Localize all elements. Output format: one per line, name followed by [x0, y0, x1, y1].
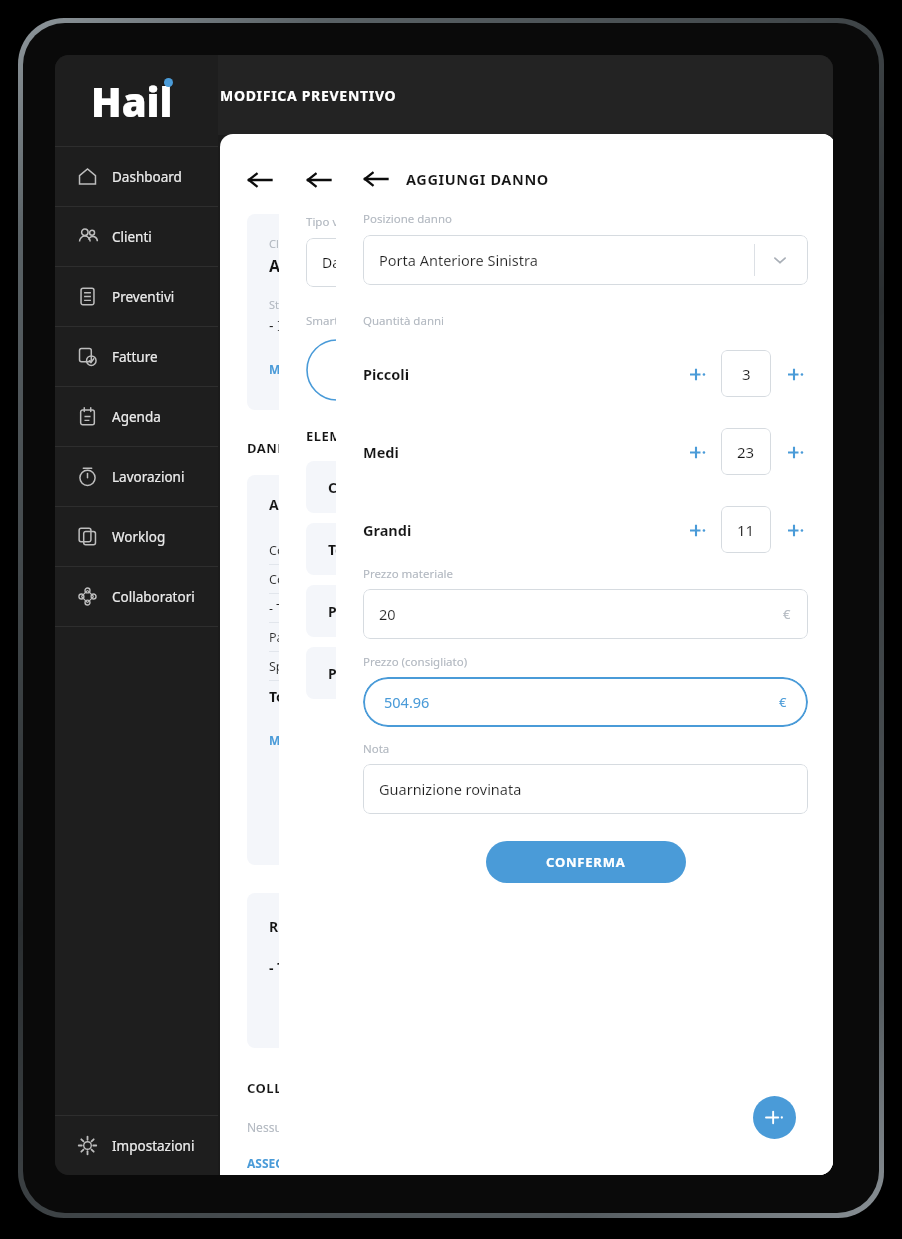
button[interactable]: Indietro [363, 166, 389, 192]
button[interactable]: Indietro [306, 167, 332, 193]
staticText: Porta Ant. Sx [328, 602, 419, 621]
button[interactable]: Diminuisci Medi [684, 439, 710, 465]
button[interactable]: 11 [721, 506, 771, 553]
staticText: MODIFICA [269, 732, 331, 748]
staticText: Nota [363, 741, 390, 757]
staticText: ELEMENTI [306, 427, 375, 445]
staticText: Riepilogo [269, 917, 335, 936]
button[interactable]: Lavorazioni [55, 447, 218, 506]
staticText: Guarnizione rovinata [379, 779, 522, 799]
button[interactable]: 3 [721, 350, 771, 397]
staticText: CONFERMA [546, 853, 626, 871]
button[interactable]: 504.96 [363, 677, 808, 727]
staticText: Worklog [112, 528, 166, 546]
staticText: 3 [742, 364, 751, 384]
button[interactable]: Fatture [55, 327, 218, 386]
button[interactable]: Aumenta Piccoli [782, 361, 808, 387]
staticText: - Tetto [269, 600, 306, 617]
staticText: Parafango [269, 629, 330, 646]
button[interactable]: Diminuisci Grandi [684, 517, 710, 543]
staticText: Hail [91, 74, 173, 128]
button[interactable]: Indietro [247, 167, 273, 193]
staticText: MODIFICA PREVENTIVO [220, 86, 397, 105]
staticText: Cofano [269, 542, 312, 559]
staticText: COLLABORATORI [247, 1079, 363, 1097]
staticText: ACME S.r.l. [269, 255, 350, 277]
staticText: Smart repair [306, 313, 374, 329]
staticText: 11 [737, 520, 755, 540]
staticText: Dark Berlina [322, 253, 404, 272]
button[interactable]: Aumenta Grandi [782, 517, 808, 543]
button[interactable]: Clienti [55, 207, 218, 266]
staticText: Stato [269, 297, 296, 312]
staticText: Tetto [328, 540, 365, 559]
staticText: MODIFICA [269, 361, 331, 377]
staticText: Porta Anteriore Sinistra [379, 250, 538, 270]
staticText: Anteriore [269, 495, 336, 514]
button[interactable]: Guarnizione rovinata [363, 764, 808, 814]
staticText: Prezzo (consigliato) [363, 654, 468, 670]
button[interactable]: Aggiungi [753, 1096, 796, 1139]
staticText: AGGIUNGI DANNO [406, 169, 549, 189]
button[interactable]: Preventivi [55, 267, 218, 326]
staticText: - In lavorazione [269, 316, 370, 335]
button[interactable]: 23 [721, 428, 771, 475]
staticText: Quantità danni [363, 313, 445, 329]
button[interactable]: Agenda [55, 387, 218, 446]
button[interactable]: Dashboard [55, 147, 218, 206]
staticText: Impostazioni [112, 1137, 195, 1155]
staticText: Sportello [269, 658, 322, 675]
staticText: Piccoli [363, 364, 410, 384]
staticText: Cofano [328, 478, 378, 497]
staticText: Cliente [269, 236, 305, 251]
button[interactable]: Collaboratori [55, 567, 218, 626]
button[interactable]: Porta Ant. Sx [306, 585, 576, 637]
staticText: € [779, 693, 787, 711]
staticText: Lavorazioni [112, 468, 185, 486]
staticText: Preventivi [112, 288, 175, 306]
staticText: Parafango [328, 664, 400, 683]
staticText: Totale [269, 687, 312, 706]
staticText: Medi [363, 442, 399, 462]
staticText: 23 [737, 442, 755, 462]
staticText: DANNI [247, 439, 294, 457]
button[interactable]: Porta Anteriore Sinistra [363, 235, 808, 285]
staticText: Agenda [112, 408, 161, 426]
staticText: Fatture [112, 348, 158, 366]
staticText: Clienti [112, 228, 152, 246]
staticText: Nessun collaboratore [247, 1119, 368, 1135]
staticText: ASSEGNA [247, 1155, 302, 1171]
staticText: Dashboard [112, 168, 182, 186]
button[interactable]: Diminuisci Piccoli [684, 361, 710, 387]
button[interactable]: Cofano [306, 461, 576, 513]
button[interactable]: 20 [363, 589, 808, 639]
button[interactable]: Tetto [306, 523, 576, 575]
button[interactable]: Impostazioni [55, 1116, 218, 1175]
staticText: - Totale [269, 958, 320, 977]
staticText: Grandi [363, 520, 412, 540]
button[interactable]: Parafango [306, 647, 576, 699]
staticText: Collaboratori [112, 588, 195, 606]
staticText: 504.96 [384, 692, 430, 712]
staticText: Prezzo materiale [363, 566, 454, 582]
staticText: Tipo veicolo [306, 214, 371, 230]
staticText: Posizione danno [363, 211, 452, 227]
button[interactable]: CONFERMA [486, 841, 686, 883]
staticText: Cofano post. [269, 571, 344, 588]
staticText: 20 [379, 604, 396, 624]
button[interactable]: Aumenta Medi [782, 439, 808, 465]
button[interactable]: Worklog [55, 507, 218, 566]
staticText: € [783, 605, 791, 623]
